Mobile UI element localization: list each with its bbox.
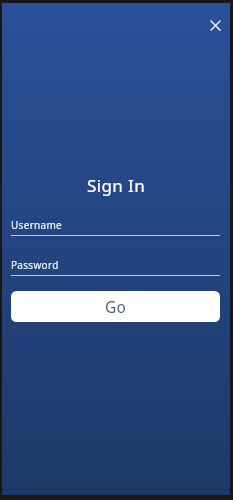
staticText: Password <box>11 258 59 272</box>
staticText: Username <box>11 218 63 232</box>
button[interactable] <box>201 11 229 39</box>
staticText: Go <box>105 296 127 317</box>
button[interactable]: Go <box>11 291 220 322</box>
staticText: Sign In <box>87 174 146 197</box>
